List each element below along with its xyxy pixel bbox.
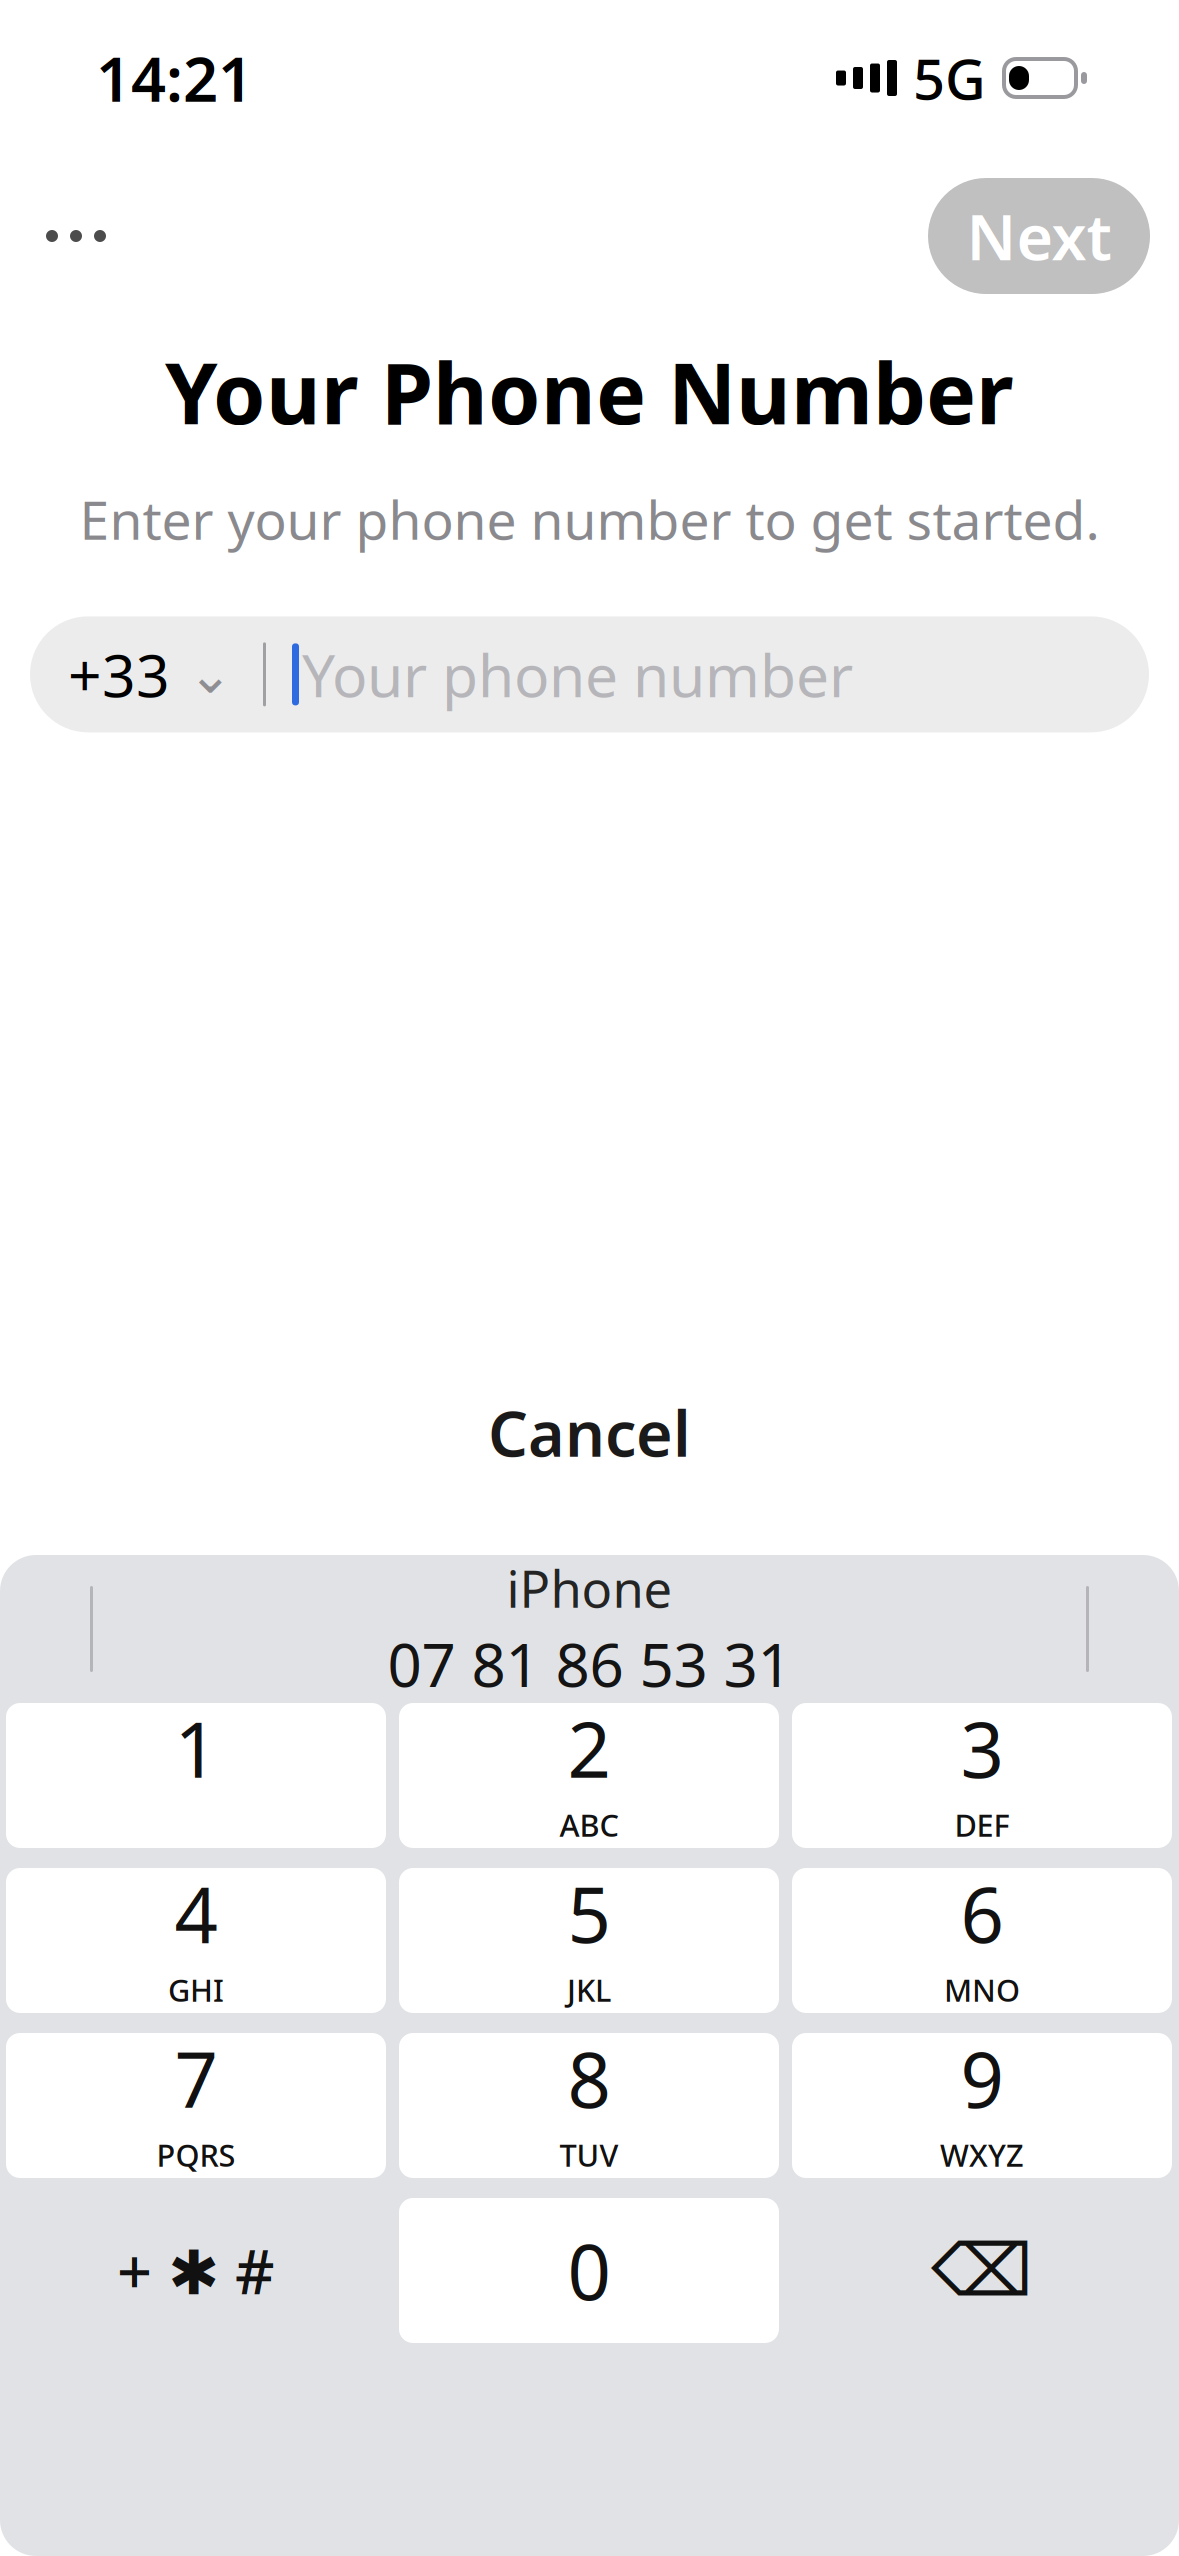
staticText: 2 (567, 1698, 610, 1799)
button[interactable]: 9 (792, 2033, 1172, 2178)
staticText: iPhone (506, 1554, 672, 1622)
staticText: 0 (567, 2220, 610, 2321)
button[interactable]: Cancel (469, 1368, 709, 1497)
staticText: PQRS (156, 2135, 235, 2175)
staticText: 3 (960, 1698, 1003, 1799)
button[interactable]: Plus, star, pound (6, 2198, 386, 2343)
button[interactable]: 0 (399, 2198, 779, 2343)
staticText: 4 (174, 1863, 217, 1964)
staticText: Cancel (488, 1391, 691, 1474)
button[interactable]: 8 (399, 2033, 779, 2178)
staticText: 07 81 86 53 31 (387, 1624, 791, 1703)
button[interactable]: +33 (30, 616, 263, 732)
staticText: 6 (960, 1863, 1003, 1964)
button[interactable]: 7 (6, 2033, 386, 2178)
staticText: 5 (567, 1863, 610, 1964)
staticText: Enter your phone number to get started. (79, 483, 1099, 554)
staticText: Your phone number (302, 635, 853, 713)
staticText: TUV (559, 2135, 618, 2175)
staticText: 1 (174, 1698, 217, 1799)
staticText: Your Phone Number (165, 336, 1014, 447)
staticText: 9 (960, 2028, 1003, 2129)
staticText: ⌄ (188, 644, 233, 705)
staticText: ⌫ (931, 2230, 1033, 2311)
button[interactable]: 4 (6, 1868, 386, 2013)
staticText: +33 (68, 635, 170, 713)
button[interactable]: More options (30, 178, 122, 294)
staticText: Next (966, 194, 1111, 278)
staticText: + ✱ # (117, 2230, 275, 2311)
staticText: JKL (567, 1970, 611, 2010)
staticText: ABC (559, 1805, 618, 1845)
staticText: DEF (954, 1805, 1009, 1845)
staticText: 14:21 (96, 37, 253, 119)
button[interactable]: 2 (399, 1703, 779, 1848)
button[interactable]: 3 (792, 1703, 1172, 1848)
staticText: GHI (168, 1970, 224, 2010)
staticText: 8 (567, 2028, 610, 2129)
staticText: MNO (944, 1970, 1020, 2010)
staticText: 5G (913, 41, 986, 115)
button[interactable]: Delete (792, 2198, 1172, 2343)
button[interactable]: 1 (6, 1703, 386, 1848)
staticText: WXYZ (940, 2135, 1024, 2175)
staticText: 7 (174, 2028, 217, 2129)
button[interactable]: 5 (399, 1868, 779, 2013)
button[interactable]: Next (928, 178, 1150, 294)
button[interactable]: 6 (792, 1868, 1172, 2013)
